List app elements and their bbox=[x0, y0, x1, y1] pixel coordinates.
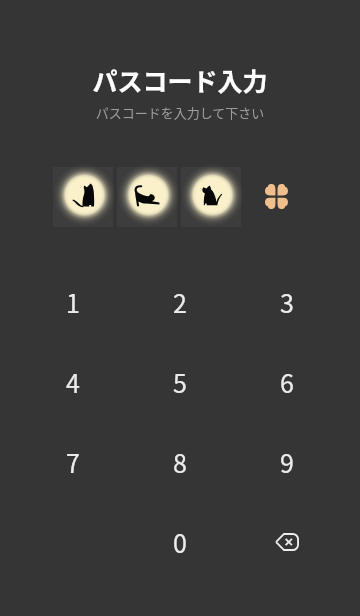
button[interactable]: 0 bbox=[126, 502, 233, 582]
staticText: 9 bbox=[280, 444, 294, 480]
staticText: 5 bbox=[173, 364, 187, 400]
button[interactable]: 4 bbox=[20, 342, 126, 422]
button[interactable]: 9 bbox=[233, 422, 340, 502]
button[interactable]: Passcode slot 1 bbox=[53, 167, 113, 227]
staticText: パスコード入力 bbox=[0, 62, 360, 98]
staticText: パスコードを入力して下さい bbox=[0, 103, 360, 122]
staticText: 2 bbox=[173, 284, 187, 320]
button[interactable]: 3 bbox=[233, 262, 340, 342]
staticText: 8 bbox=[173, 444, 187, 480]
button[interactable]: 7 bbox=[20, 422, 126, 502]
button[interactable]: 5 bbox=[126, 342, 233, 422]
button[interactable]: 6 bbox=[233, 342, 340, 422]
button[interactable]: 2 bbox=[126, 262, 233, 342]
button[interactable]: Passcode slot 3 bbox=[181, 167, 241, 227]
button[interactable]: Passcode slot 2 bbox=[117, 167, 177, 227]
staticText: 0 bbox=[173, 524, 187, 560]
button[interactable]: 1 bbox=[20, 262, 126, 342]
staticText: 4 bbox=[66, 364, 80, 400]
staticText: 1 bbox=[66, 284, 80, 320]
button[interactable]: Clover bbox=[256, 176, 296, 216]
staticText: 7 bbox=[66, 444, 80, 480]
staticText: 3 bbox=[280, 284, 294, 320]
staticText: 6 bbox=[280, 364, 294, 400]
button[interactable]: Backspace bbox=[233, 502, 340, 582]
button[interactable]: 8 bbox=[126, 422, 233, 502]
